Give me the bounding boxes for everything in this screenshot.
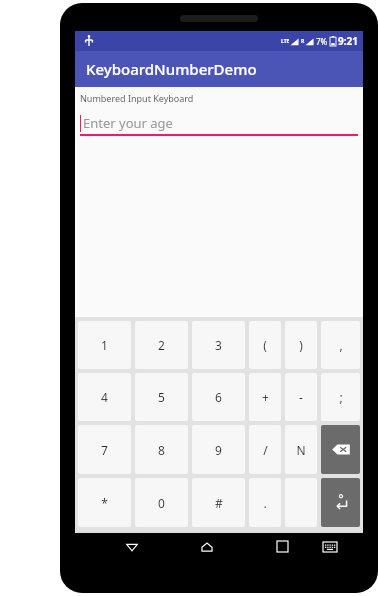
staticText: # xyxy=(215,495,223,511)
button[interactable]: Backspace xyxy=(321,425,360,474)
button[interactable]: Enter xyxy=(321,478,360,527)
staticText: 9 xyxy=(215,442,222,458)
staticText: N xyxy=(296,442,306,458)
staticText: Enter your age xyxy=(83,114,173,132)
staticText: R xyxy=(301,38,305,45)
button[interactable]: . xyxy=(249,478,281,527)
button[interactable]: Home xyxy=(194,534,220,559)
button[interactable]: , xyxy=(321,321,360,369)
button[interactable]: 2 xyxy=(135,321,188,369)
staticText: Numbered Input Keyboard xyxy=(80,92,194,104)
button[interactable]: 7 xyxy=(78,425,131,474)
button[interactable]: + xyxy=(249,373,281,421)
button[interactable]: Enter your age xyxy=(80,110,358,136)
staticText: KeyboardNumberDemo xyxy=(86,59,257,79)
button[interactable]: / xyxy=(249,425,281,474)
staticText: , xyxy=(339,337,343,353)
staticText: ( xyxy=(263,337,267,353)
button[interactable]: 5 xyxy=(135,373,188,421)
staticText: ; xyxy=(339,389,343,405)
button[interactable]: Back xyxy=(119,534,145,559)
staticText: 6 xyxy=(215,389,222,405)
button[interactable]: 9 xyxy=(192,425,245,474)
staticText: + xyxy=(262,389,269,405)
button[interactable]: * xyxy=(78,478,131,527)
staticText: 2 xyxy=(158,337,165,353)
staticText: 1 xyxy=(101,337,108,353)
staticText: 3 xyxy=(215,337,222,353)
staticText: 7% xyxy=(316,36,328,47)
staticText: 9:21 xyxy=(338,34,358,48)
staticText: LTE xyxy=(281,38,290,45)
button[interactable]: 1 xyxy=(78,321,131,369)
staticText: 8 xyxy=(158,442,165,458)
button[interactable]: 4 xyxy=(78,373,131,421)
button[interactable]: 0 xyxy=(135,478,188,527)
button[interactable]: N xyxy=(285,425,317,474)
button[interactable]: Switch keyboard xyxy=(317,534,343,559)
button[interactable]: # xyxy=(192,478,245,527)
staticText: 5 xyxy=(158,389,165,405)
button[interactable]: 3 xyxy=(192,321,245,369)
button[interactable]: Recent apps xyxy=(269,534,295,559)
button[interactable]: 6 xyxy=(192,373,245,421)
button[interactable]: - xyxy=(285,373,317,421)
staticText: 4 xyxy=(101,389,108,405)
staticText: . xyxy=(263,495,267,511)
staticText: / xyxy=(263,442,268,458)
staticText: - xyxy=(299,389,303,405)
button[interactable]: ( xyxy=(249,321,281,369)
staticText: 7 xyxy=(101,442,108,458)
staticText: * xyxy=(101,495,108,511)
button[interactable]: ) xyxy=(285,321,317,369)
button[interactable]: ; xyxy=(321,373,360,421)
button[interactable]: 8 xyxy=(135,425,188,474)
staticText: 0 xyxy=(158,495,165,511)
staticText: ) xyxy=(299,337,303,353)
